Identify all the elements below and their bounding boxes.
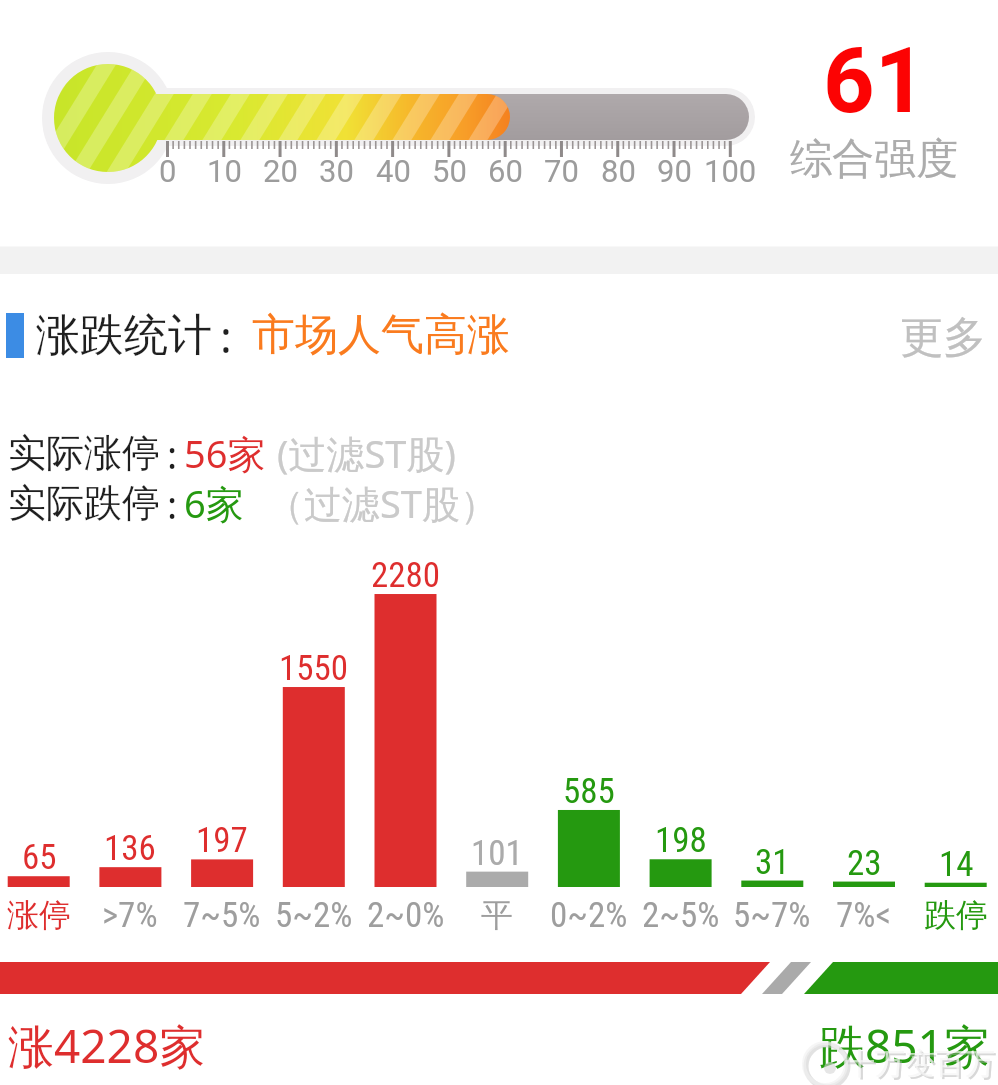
staticText: 101 (471, 833, 523, 874)
staticText: 198 (655, 820, 707, 861)
staticText: 23 (847, 843, 882, 884)
staticText: (过滤ST股) (277, 427, 456, 479)
staticText: 十万变百万 (845, 1045, 995, 1083)
staticText: 平 (481, 895, 513, 935)
staticText: 综合强度 (790, 133, 958, 186)
staticText: 585 (563, 771, 615, 812)
staticText: 14 (939, 844, 974, 885)
staticText: 5~7% (733, 895, 811, 936)
staticText: 40 (376, 153, 411, 189)
staticText: 0 (159, 153, 177, 189)
staticText: : (167, 478, 178, 530)
staticText: 更多 (900, 311, 986, 365)
staticText: : (220, 306, 232, 366)
staticText: 100 (704, 153, 757, 189)
staticText: 197 (196, 820, 248, 861)
staticText: 跌851家 (819, 1014, 990, 1077)
staticText: 涨停 (7, 895, 71, 935)
staticText: 6家 (184, 477, 244, 529)
staticText: 0~2% (550, 895, 628, 936)
staticText: 2~0% (367, 895, 445, 936)
button[interactable]: 更多 (900, 311, 986, 365)
staticText: 十万变百万 (847, 1047, 997, 1085)
staticText: 50 (432, 153, 467, 189)
staticText: 涨4228家 (8, 1014, 206, 1077)
staticText: 7~5% (183, 895, 261, 936)
staticText: 2~5% (642, 895, 720, 936)
staticText: 30 (319, 153, 354, 189)
staticText: （过滤ST股） (266, 477, 498, 529)
staticText: 10 (207, 153, 242, 189)
staticText: 70 (544, 153, 579, 189)
staticText: 31 (755, 842, 790, 883)
staticText: 60 (488, 153, 523, 189)
staticText: 65 (22, 837, 57, 878)
staticText: 80 (601, 153, 636, 189)
staticText: 20 (263, 153, 298, 189)
staticText: 7%< (836, 895, 892, 936)
staticText: 5~2% (275, 895, 353, 936)
staticText: : (167, 428, 178, 480)
staticText: 跌停 (924, 895, 988, 935)
staticText: 2280 (371, 555, 441, 596)
staticText: 1550 (279, 648, 349, 689)
staticText: 90 (657, 153, 692, 189)
staticText: 61 (823, 29, 927, 134)
staticText: 56家 (184, 427, 266, 479)
staticText: >7% (102, 895, 158, 936)
staticText: 实际跌停 (8, 479, 160, 527)
staticText: 136 (104, 828, 156, 869)
staticText: 市场人气高涨 (252, 308, 510, 362)
staticText: 涨跌统计 (36, 308, 212, 363)
staticText: 实际涨停 (8, 429, 160, 477)
